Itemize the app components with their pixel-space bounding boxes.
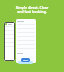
staticText: Simple direct. Clear and fast booking. xyxy=(2,5,62,14)
staticText: Book xyxy=(23,59,29,62)
button[interactable]: Book xyxy=(21,58,30,62)
